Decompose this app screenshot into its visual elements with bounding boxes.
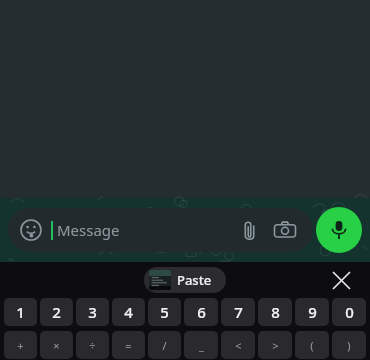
staticText: < (235, 338, 242, 353)
button[interactable]: + (4, 331, 37, 359)
button[interactable]: 6 (184, 298, 218, 326)
staticText: 5 (160, 302, 169, 322)
staticText: = (125, 338, 132, 353)
button[interactable]: 5 (148, 298, 181, 326)
button[interactable]: = (112, 331, 145, 359)
staticText: 7 (234, 302, 243, 322)
button[interactable]: Paste (144, 267, 226, 293)
staticText: 0 (345, 302, 354, 322)
staticText: 4 (124, 302, 133, 322)
button[interactable]: ) (332, 331, 366, 359)
staticText: ) (347, 338, 351, 353)
staticText: / (162, 338, 167, 353)
staticText: Message (57, 220, 120, 240)
button[interactable]: Record voice message (316, 207, 362, 253)
button[interactable]: 2 (40, 298, 73, 326)
button[interactable]: 3 (76, 298, 109, 326)
staticText: 6 (197, 302, 206, 322)
button[interactable]: 9 (295, 298, 329, 326)
button[interactable]: Camera (269, 214, 301, 246)
staticText: 1 (16, 302, 25, 322)
button[interactable]: 4 (112, 298, 145, 326)
staticText: ÷ (89, 338, 96, 353)
staticText: Paste (177, 271, 212, 289)
button[interactable]: Close clipboard suggestion (326, 265, 356, 295)
button[interactable]: ( (295, 331, 329, 359)
staticText: 8 (271, 302, 280, 322)
button[interactable]: 7 (221, 298, 255, 326)
staticText: 9 (308, 302, 317, 322)
staticText: 3 (88, 302, 97, 322)
button[interactable]: ÷ (76, 331, 109, 359)
button[interactable]: / (148, 331, 181, 359)
button[interactable]: 8 (258, 298, 292, 326)
button[interactable]: Attach (233, 214, 265, 246)
button[interactable]: < (221, 331, 255, 359)
button[interactable]: 0 (332, 298, 366, 326)
button[interactable]: > (258, 331, 292, 359)
staticText: + (17, 338, 24, 353)
button[interactable]: 1 (4, 298, 37, 326)
button[interactable]: Emoji and stickers (8, 208, 313, 252)
staticText: × (53, 338, 60, 353)
staticText: _ (199, 338, 204, 353)
staticText: 2 (52, 302, 61, 322)
button[interactable]: Emoji and stickers (18, 217, 44, 243)
button[interactable]: _ (184, 331, 218, 359)
staticText: ( (310, 338, 314, 353)
staticText: > (272, 338, 279, 353)
button[interactable]: × (40, 331, 73, 359)
